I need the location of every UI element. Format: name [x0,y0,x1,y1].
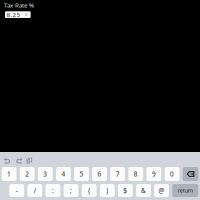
button[interactable]: & [136,184,151,197]
button[interactable]: 2 [20,167,35,181]
staticText: ( [88,186,90,195]
staticText: : [52,186,54,195]
staticText: 0 [170,170,174,178]
staticText: 3 [43,170,47,178]
button[interactable]: - [9,184,24,197]
button[interactable]: return [172,184,198,197]
staticText: 8 [134,170,138,178]
staticText: - [16,186,18,195]
button[interactable]: 4 [56,167,71,181]
button[interactable]: @ [154,184,169,197]
staticText: / [34,186,36,195]
staticText: 1 [7,170,11,178]
button[interactable]: 1 [2,167,16,181]
button[interactable]: Redo [16,152,26,167]
button[interactable]: 7 [110,167,125,181]
staticText: ) [106,186,108,195]
staticText: ; [70,186,72,195]
staticText: 5 [79,170,83,178]
button[interactable]: 5 [74,167,89,181]
button[interactable]: 8 [128,167,143,181]
staticText: $ [123,186,127,195]
staticText: @ [159,186,165,195]
staticText: 4 [61,170,65,178]
button[interactable]: ; [64,184,78,197]
staticText: 8.25 [7,10,21,19]
staticText: 2 [25,170,29,178]
button[interactable]: ( [82,184,97,197]
button[interactable]: 6 [92,167,107,181]
staticText: 7 [116,170,120,178]
button[interactable]: / [27,184,42,197]
button[interactable]: 9 [146,167,161,181]
button[interactable]: Undo [0,152,16,167]
staticText: 6 [98,170,102,178]
staticText: Tax Rate % [4,1,34,9]
staticText: & [141,186,146,195]
button[interactable]: Paste [26,152,32,167]
button[interactable]: Clear text [25,13,28,16]
button[interactable]: Delete [183,167,198,181]
button[interactable]: ) [100,184,115,197]
button[interactable]: $ [118,184,133,197]
button[interactable]: 0 [165,167,179,181]
staticText: return [178,187,193,194]
button[interactable]: : [46,184,60,197]
staticText: 9 [152,170,156,178]
button[interactable]: 3 [38,167,53,181]
